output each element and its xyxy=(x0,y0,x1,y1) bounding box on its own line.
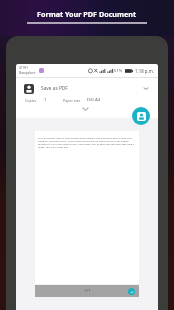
staticText: 1 xyxy=(44,97,47,103)
staticText: 1/1 xyxy=(84,288,91,294)
staticText: 1:18 p.m. xyxy=(135,68,155,74)
staticText: 61% xyxy=(114,68,123,74)
staticText: 41991 xyxy=(19,66,29,70)
staticText: Rx is an English class of HMF module eve… xyxy=(38,136,137,148)
button[interactable]: Save as PDF xyxy=(132,107,150,125)
staticText: Save as PDF xyxy=(41,85,68,92)
staticText: Paper size xyxy=(63,98,81,103)
button[interactable]: Save as PDF xyxy=(24,82,158,95)
staticText: Copies xyxy=(25,98,37,103)
staticText: Format Your PDF Document xyxy=(37,9,137,19)
button[interactable]: 1/1 xyxy=(35,285,139,297)
staticText: ISO A4 xyxy=(87,97,101,103)
staticText: Bangalore xyxy=(19,70,36,75)
